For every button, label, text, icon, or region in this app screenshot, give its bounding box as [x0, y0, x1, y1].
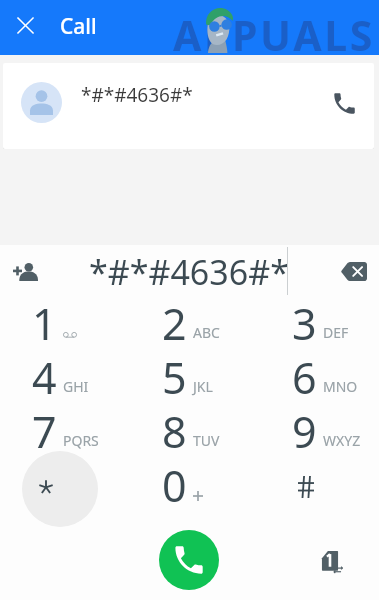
staticText: PQRS: [63, 431, 99, 450]
button[interactable]: [0, 459, 126, 513]
button[interactable]: [253, 405, 379, 459]
button[interactable]: [253, 459, 379, 513]
staticText: 0: [162, 456, 187, 510]
button[interactable]: Call: [159, 530, 219, 590]
staticText: 2: [162, 294, 187, 348]
staticText: TUV: [193, 431, 220, 450]
staticText: 7: [32, 402, 57, 456]
button[interactable]: [0, 351, 126, 405]
button[interactable]: Add contact: [3, 249, 48, 294]
staticText: MNO: [323, 377, 358, 396]
button[interactable]: *#*#4636#*: [3, 63, 374, 149]
button[interactable]: [126, 297, 252, 351]
staticText: 9: [292, 402, 317, 456]
staticText: Call: [60, 12, 97, 41]
staticText: ABC: [193, 323, 220, 342]
staticText: 1: [32, 294, 57, 348]
button[interactable]: Close: [9, 9, 41, 41]
staticText: DEF: [323, 323, 349, 342]
button[interactable]: [253, 351, 379, 405]
staticText: WXYZ: [323, 431, 361, 450]
button[interactable]: [253, 297, 379, 351]
button[interactable]: [0, 405, 126, 459]
button[interactable]: [0, 297, 126, 351]
staticText: *#*#4636#*: [89, 249, 289, 295]
button[interactable]: [126, 351, 252, 405]
button[interactable]: [126, 459, 252, 513]
button[interactable]: Call: [320, 82, 368, 130]
staticText: APPUALS: [173, 7, 375, 63]
staticText: 3: [292, 294, 317, 348]
staticText: 5: [162, 348, 187, 402]
staticText: *#*#4636#*: [81, 82, 193, 108]
staticText: GHI: [63, 377, 89, 396]
staticText: 4: [32, 348, 57, 402]
staticText: JKL: [193, 377, 213, 396]
staticText: 6: [292, 348, 317, 402]
button[interactable]: Backspace: [331, 249, 376, 294]
staticText: 8: [162, 402, 187, 456]
button[interactable]: Select SIM: [306, 535, 354, 583]
button[interactable]: [126, 405, 252, 459]
